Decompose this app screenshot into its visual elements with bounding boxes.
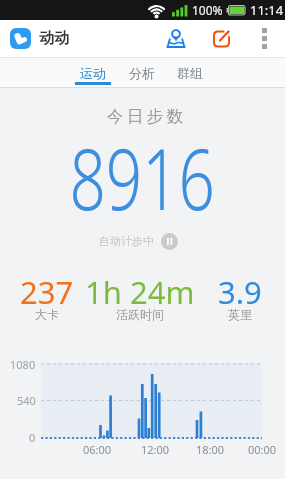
staticText: 540 bbox=[17, 393, 36, 408]
button[interactable] bbox=[209, 26, 235, 52]
staticText: 英里 bbox=[228, 307, 252, 322]
staticText: 动动 bbox=[39, 29, 69, 48]
staticText: 100% bbox=[192, 2, 223, 18]
button[interactable] bbox=[163, 26, 189, 52]
staticText: 大卡 bbox=[35, 307, 59, 322]
button[interactable]: 237 bbox=[2, 271, 92, 328]
staticText: 06:00 bbox=[83, 442, 112, 457]
staticText: 00:00 bbox=[248, 442, 277, 457]
staticText: 活跃时间 bbox=[116, 307, 164, 322]
button[interactable]: 运动 bbox=[75, 57, 111, 88]
staticText: 群组 bbox=[177, 65, 203, 81]
staticText: 3.9 bbox=[218, 271, 262, 313]
staticText: 分析 bbox=[129, 65, 155, 81]
button[interactable]: 群组 bbox=[172, 57, 208, 88]
staticText: 12:00 bbox=[141, 442, 170, 457]
staticText: 18:00 bbox=[196, 442, 225, 457]
staticText: 运动 bbox=[80, 65, 106, 81]
staticText: 今日步数 bbox=[105, 106, 185, 127]
button[interactable] bbox=[253, 20, 275, 57]
button[interactable]: 3.9 bbox=[195, 271, 285, 328]
staticText: 1080 bbox=[10, 357, 36, 372]
staticText: 11:14 bbox=[250, 1, 284, 19]
button[interactable] bbox=[161, 233, 178, 250]
staticText: 237 bbox=[20, 271, 74, 313]
staticText: 1h 24m bbox=[85, 271, 195, 313]
staticText: 8916 bbox=[69, 119, 216, 235]
button[interactable]: 1h 24m bbox=[75, 271, 205, 328]
button[interactable]: 分析 bbox=[124, 57, 160, 88]
staticText: 0 bbox=[29, 430, 36, 445]
staticText: 自动计步中 bbox=[99, 234, 154, 248]
